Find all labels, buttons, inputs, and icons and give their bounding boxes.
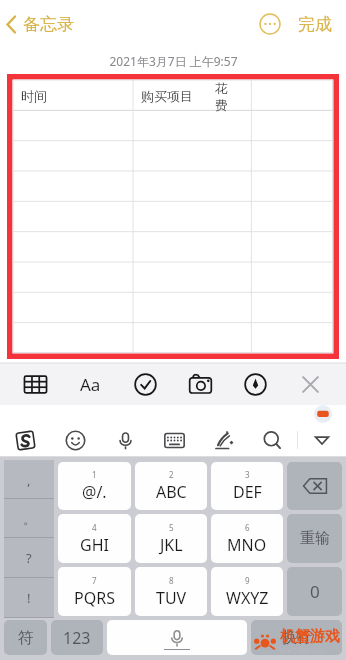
button[interactable]: Close keyboard: [283, 363, 338, 405]
staticText: 3: [245, 469, 250, 480]
button[interactable]: 0: [287, 567, 342, 616]
staticText: 。: [23, 511, 36, 527]
button[interactable]: 完成: [294, 9, 336, 40]
staticText: 6: [245, 522, 250, 533]
button[interactable]: ,: [4, 460, 54, 499]
button[interactable]: Sogou input: [0, 423, 50, 457]
button[interactable]: 5: [135, 514, 207, 563]
staticText: jixie5188.com: [280, 646, 326, 656]
button[interactable]: Checklist: [118, 363, 173, 405]
staticText: 8: [169, 575, 174, 586]
button[interactable]: Hide keyboard: [297, 423, 346, 457]
staticText: 完成: [298, 14, 332, 35]
staticText: 9: [245, 575, 250, 586]
button[interactable]: Search: [248, 423, 297, 457]
staticText: 5: [169, 522, 174, 533]
button[interactable]: 1: [58, 462, 131, 510]
staticText: ?: [26, 549, 32, 567]
button[interactable]: Handwriting: [199, 423, 248, 457]
button[interactable]: [13, 80, 333, 353]
staticText: 机蟹游戏: [280, 627, 340, 646]
button[interactable]: 符: [4, 620, 47, 655]
staticText: !: [27, 589, 31, 607]
button[interactable]: Emoji: [50, 423, 100, 457]
staticText: 0: [310, 580, 320, 603]
staticText: DEF: [233, 481, 262, 503]
staticText: 时间: [21, 88, 47, 104]
staticText: ,: [27, 471, 31, 489]
button[interactable]: Delete: [287, 462, 342, 510]
staticText: GHI: [80, 534, 109, 556]
staticText: MNO: [227, 534, 267, 556]
button[interactable]: Keyboard layout: [150, 423, 199, 457]
staticText: 重输: [300, 529, 330, 548]
staticText: @/.: [82, 481, 107, 503]
button[interactable]: Voice input: [100, 423, 150, 457]
staticText: 2021年3月7日 上午9:57: [109, 53, 238, 69]
button[interactable]: 8: [135, 567, 207, 616]
staticText: 换行: [282, 628, 312, 647]
staticText: 2: [169, 469, 174, 480]
button[interactable]: More options: [254, 8, 286, 40]
button[interactable]: Emoji sticker: [314, 405, 332, 423]
button[interactable]: Text format: [63, 363, 118, 405]
staticText: TUV: [156, 587, 187, 609]
staticText: 符: [18, 628, 34, 648]
staticText: 4: [92, 522, 97, 533]
button[interactable]: 7: [58, 567, 131, 616]
button[interactable]: 。: [4, 499, 54, 538]
staticText: 花费金额: [215, 80, 239, 112]
staticText: 购买项目: [141, 88, 193, 104]
staticText: ABC: [156, 481, 187, 503]
button[interactable]: 换行: [251, 620, 342, 655]
staticText: 1: [92, 469, 97, 480]
button[interactable]: ?: [4, 538, 54, 578]
staticText: 7: [92, 575, 97, 586]
button[interactable]: 3: [211, 462, 283, 510]
button[interactable]: 123: [51, 620, 103, 655]
button[interactable]: 6: [211, 514, 283, 563]
button[interactable]: 2: [135, 462, 207, 510]
button[interactable]: 备忘录: [0, 8, 84, 41]
staticText: 备忘录: [23, 14, 74, 35]
button[interactable]: Markup: [228, 363, 283, 405]
button[interactable]: 4: [58, 514, 131, 563]
staticText: WXYZ: [226, 587, 269, 609]
staticText: PQRS: [74, 587, 115, 609]
staticText: JKL: [160, 534, 183, 556]
button[interactable]: Camera: [173, 363, 228, 405]
button[interactable]: 重输: [287, 514, 342, 563]
button[interactable]: 9: [211, 567, 283, 616]
button[interactable]: Space, voice input: [107, 620, 247, 655]
staticText: Aa: [80, 373, 101, 396]
button[interactable]: Insert table: [8, 363, 63, 405]
staticText: 123: [63, 627, 91, 649]
button[interactable]: !: [4, 578, 54, 618]
